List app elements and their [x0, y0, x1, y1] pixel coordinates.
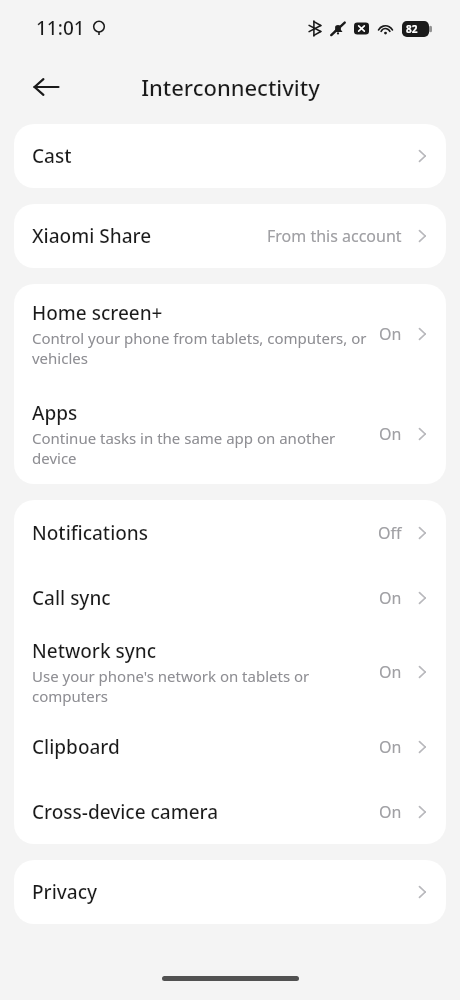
- button[interactable]: Clipboard: [14, 714, 446, 779]
- staticText: 82: [406, 22, 418, 36]
- staticText: Use your phone's network on tablets or c…: [32, 666, 379, 706]
- button[interactable]: Back: [22, 63, 70, 111]
- staticText: Xiaomi Share: [32, 223, 152, 249]
- staticText: Control your phone from tablets, compute…: [32, 328, 379, 368]
- staticText: On: [379, 587, 402, 609]
- staticText: On: [379, 736, 402, 758]
- button[interactable]: Apps: [14, 384, 446, 484]
- staticText: From this account: [267, 225, 402, 247]
- staticText: Notifications: [32, 520, 149, 546]
- staticText: Home screen+: [32, 300, 163, 326]
- button[interactable]: Cast: [14, 124, 446, 188]
- staticText: On: [379, 423, 402, 445]
- staticText: On: [379, 801, 402, 823]
- button[interactable]: Cross-device camera: [14, 779, 446, 844]
- staticText: Off: [378, 522, 402, 544]
- button[interactable]: Xiaomi Share: [14, 204, 446, 268]
- staticText: 11:01: [36, 15, 85, 41]
- staticText: Interconnectivity: [141, 72, 320, 102]
- staticText: Apps: [32, 400, 78, 426]
- staticText: Cross-device camera: [32, 799, 219, 825]
- button[interactable]: Home screen+: [14, 284, 446, 384]
- button[interactable]: Privacy: [14, 860, 446, 924]
- staticText: Privacy: [32, 879, 97, 905]
- staticText: Cast: [32, 143, 72, 169]
- staticText: Network sync: [32, 638, 156, 664]
- staticText: Continue tasks in the same app on anothe…: [32, 428, 379, 468]
- button[interactable]: Call sync: [14, 565, 446, 630]
- button[interactable]: Network sync: [14, 630, 446, 714]
- staticText: On: [379, 661, 402, 683]
- staticText: Clipboard: [32, 734, 120, 760]
- staticText: On: [379, 323, 402, 345]
- button[interactable]: Notifications: [14, 500, 446, 565]
- staticText: Call sync: [32, 585, 111, 611]
